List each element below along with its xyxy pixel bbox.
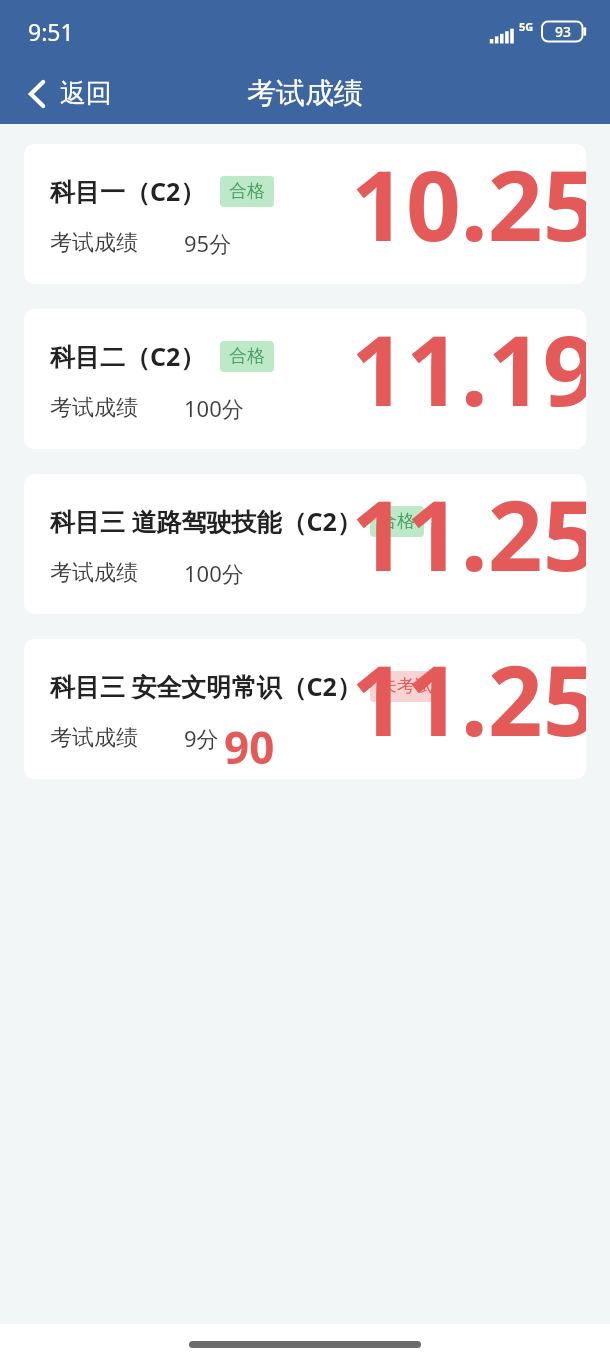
staticText: 合格 — [229, 345, 265, 368]
button[interactable]: 科目三 道路驾驶技能（C2） — [24, 474, 586, 614]
staticText: 95分 — [184, 228, 232, 258]
staticText: 11.25 — [351, 474, 586, 599]
staticText: 93 — [555, 22, 572, 41]
button[interactable]: 科目一（C2） — [24, 144, 586, 284]
staticText: 9:51 — [28, 16, 74, 47]
staticText: 考试成绩 — [50, 229, 138, 257]
staticText: 9分 — [184, 723, 219, 753]
button[interactable]: 科目三 安全文明常识（C2） — [24, 639, 586, 779]
staticText: 科目三 安全文明常识（C2） — [50, 669, 362, 703]
button[interactable]: 科目二（C2） — [24, 309, 586, 449]
staticText: 11.19 — [351, 309, 586, 434]
staticText: 合格 — [379, 510, 415, 533]
staticText: 考试成绩 — [50, 394, 138, 422]
staticText: 科目二（C2） — [50, 339, 206, 373]
staticText: 考试成绩 — [50, 559, 138, 587]
staticText: 科目一（C2） — [50, 174, 206, 208]
staticText: 5G — [519, 19, 534, 34]
staticText: 100分 — [184, 393, 244, 423]
staticText: 100分 — [184, 558, 244, 588]
staticText: 考试成绩 — [247, 75, 363, 112]
staticText: 11.25 — [351, 639, 586, 764]
staticText: 返回 — [60, 77, 112, 110]
staticText: 科目三 道路驾驶技能（C2） — [50, 504, 362, 538]
staticText: 未考试 — [379, 675, 433, 698]
staticText: 90 — [224, 717, 275, 777]
staticText: 合格 — [229, 180, 265, 203]
button[interactable]: 返回 — [0, 69, 128, 118]
staticText: 考试成绩 — [50, 724, 138, 752]
staticText: 10.25 — [351, 144, 586, 269]
